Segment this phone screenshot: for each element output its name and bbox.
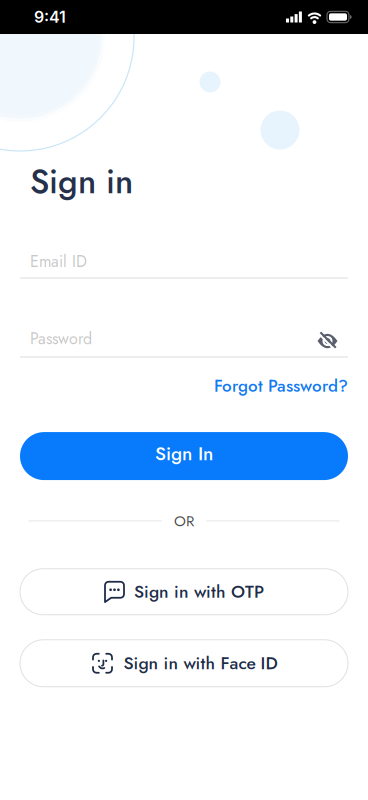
button[interactable]: Forgot Password?: [214, 373, 348, 398]
staticText: Sign in with OTP: [134, 579, 264, 604]
staticText: Sign In: [155, 440, 213, 467]
button[interactable]: Password: [20, 327, 348, 357]
button[interactable]: [315, 327, 339, 351]
staticText: OR: [174, 510, 194, 532]
staticText: Sign in with Face ID: [123, 651, 277, 676]
staticText: Password: [30, 327, 92, 350]
button[interactable]: Email ID: [20, 250, 348, 278]
button[interactable]: Sign in with OTP: [20, 569, 348, 615]
staticText: 9:41: [34, 7, 66, 27]
button[interactable]: Sign in with Face ID: [20, 640, 348, 687]
staticText: Forgot Password?: [214, 373, 348, 398]
staticText: Sign in: [30, 157, 133, 206]
staticText: Email ID: [30, 250, 87, 273]
button[interactable]: Sign In: [20, 432, 348, 480]
